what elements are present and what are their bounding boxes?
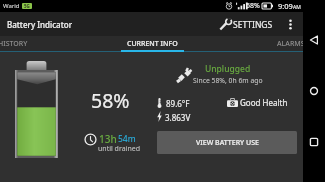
staticText: HISTORY <box>0 39 28 49</box>
staticText: 54m <box>118 133 136 145</box>
staticText: 13h <box>99 132 117 146</box>
staticText: 3.863V <box>165 112 191 123</box>
staticText: CURRENT INFO <box>127 39 178 49</box>
button[interactable]: HISTORY <box>0 36 61 51</box>
staticText: 58% <box>91 87 130 114</box>
staticText: Since 58%, 0h 6m ago <box>193 76 263 85</box>
staticText: 5G <box>24 3 30 9</box>
staticText: SETTINGS <box>233 19 273 31</box>
button[interactable]: More options <box>282 16 298 32</box>
button[interactable]: VIEW BATTERY USE <box>157 131 297 154</box>
staticText: VIEW BATTERY USE <box>196 138 259 148</box>
staticText: AM <box>293 4 301 11</box>
staticText: 58% <box>246 1 260 11</box>
staticText: Good Health <box>240 97 288 108</box>
staticText: Warid <box>3 2 20 10</box>
button[interactable]: Recents <box>303 131 325 153</box>
staticText: until drained <box>98 144 140 154</box>
button[interactable]: Back <box>303 29 325 51</box>
staticText: ALARMS <box>277 39 305 49</box>
button[interactable]: Home <box>303 80 325 102</box>
staticText: 9:09 <box>278 1 293 11</box>
staticText: 89.6°F <box>166 98 190 109</box>
button[interactable]: ALARMS <box>243 36 325 51</box>
button[interactable]: SETTINGS <box>216 13 276 36</box>
button[interactable]: CURRENT INFO <box>104 36 200 51</box>
staticText: Battery Indicator <box>7 19 73 30</box>
staticText: Unplugged <box>205 63 251 75</box>
